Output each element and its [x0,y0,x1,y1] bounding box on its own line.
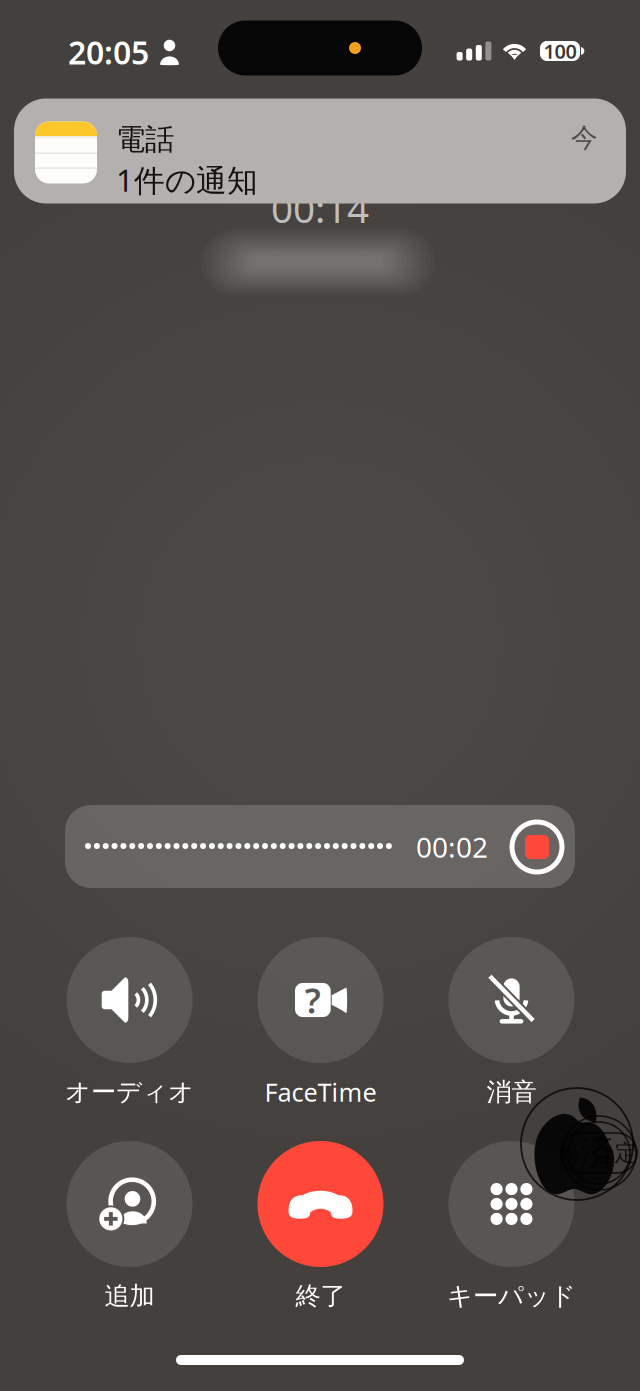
button[interactable]: 消音 [416,937,607,1107]
staticText: オーディオ [65,1076,194,1107]
staticText: 00:02 [416,828,488,866]
button[interactable]: 追加 [34,1141,225,1311]
staticText: 消音 [486,1076,536,1107]
staticText: 済 [579,1132,614,1174]
button[interactable]: キーパッド [416,1141,607,1311]
staticText: 定 [614,1139,637,1167]
button[interactable]: オーディオ [34,937,225,1107]
staticText: ? [305,977,321,1023]
staticText: 追加 [104,1280,154,1311]
staticText: 1件の通知 [116,159,258,200]
button[interactable]: ? [225,937,416,1107]
staticText: 今 [571,121,598,154]
staticText: キーパッド [447,1280,576,1311]
staticText: 100 [543,38,576,64]
staticText: FaceTime [264,1075,376,1109]
staticText: 00:14 [271,182,369,234]
staticText: 電話 [116,121,174,157]
button[interactable]: 録音停止 [508,818,566,876]
button[interactable]: 電話 [14,98,626,203]
button[interactable]: 終了 [225,1141,416,1311]
staticText: 20:05 [68,31,149,73]
staticText: 終了 [295,1280,345,1311]
